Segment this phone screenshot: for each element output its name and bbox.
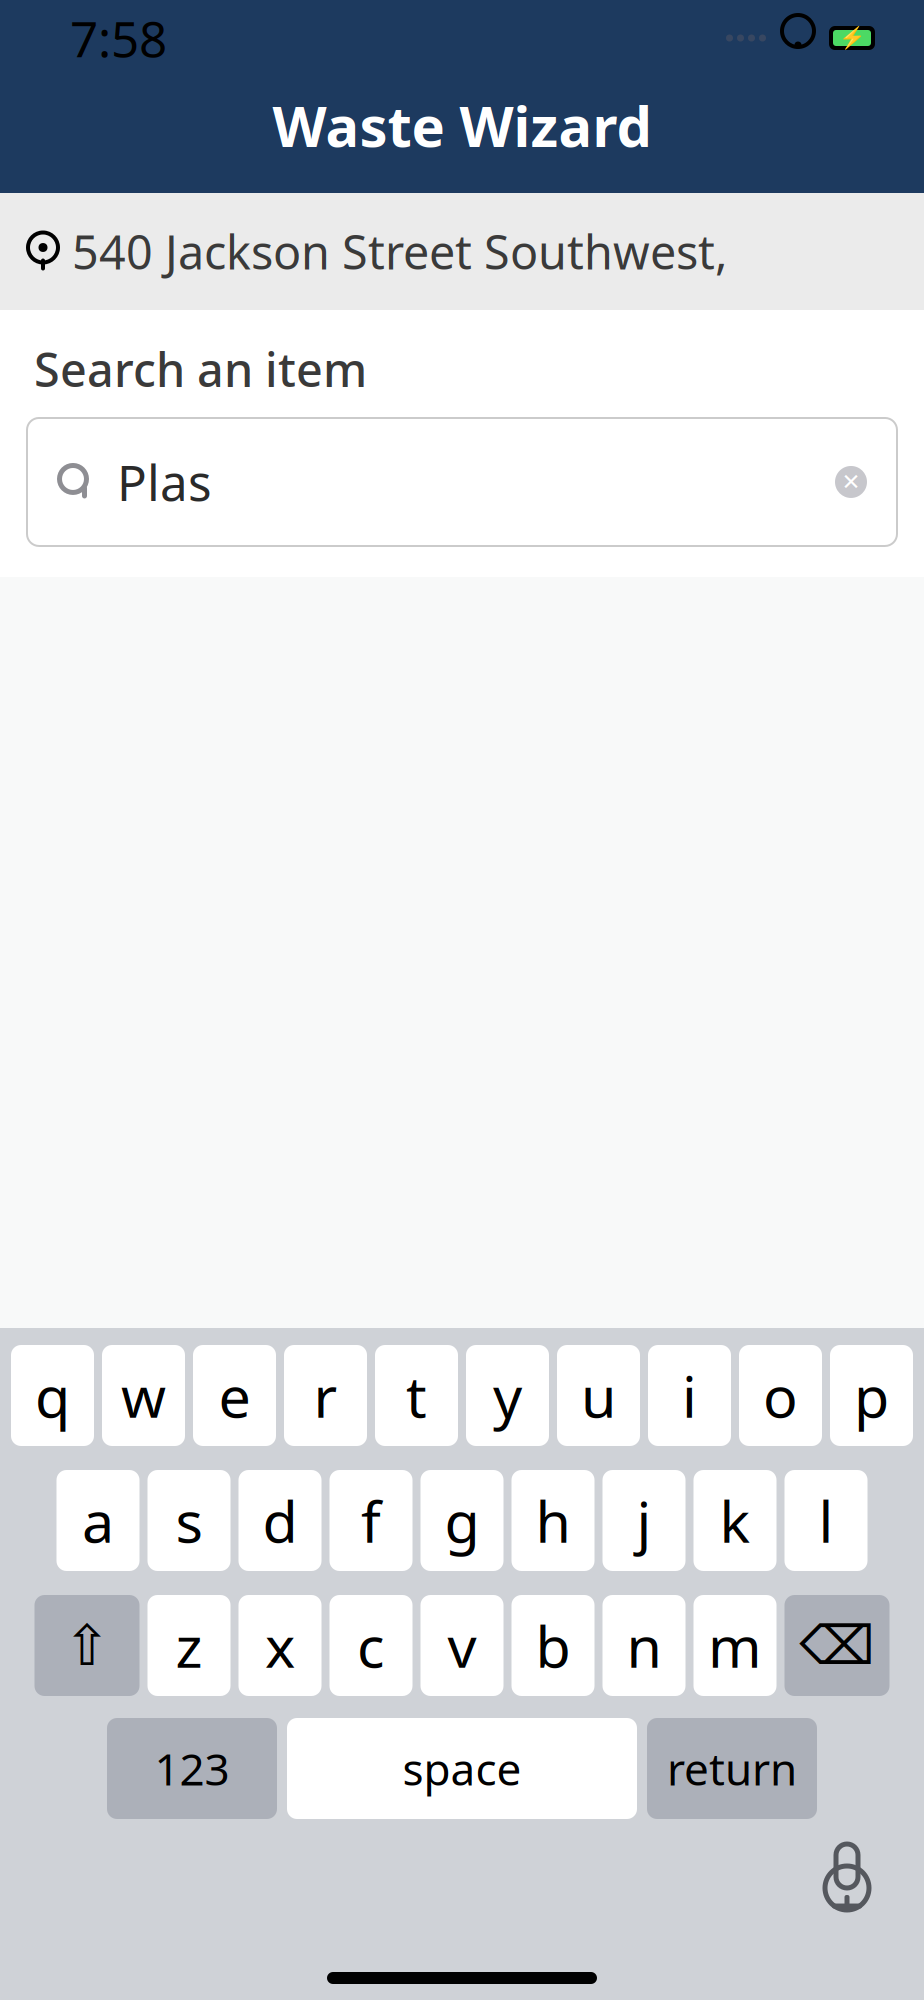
button[interactable]: m <box>693 1595 776 1696</box>
button[interactable]: x <box>238 1595 321 1696</box>
staticText: space <box>402 1739 521 1798</box>
staticText: z <box>175 1607 202 1683</box>
staticText: k <box>719 1482 750 1558</box>
button[interactable]: c <box>329 1595 412 1696</box>
staticText: q <box>35 1357 70 1433</box>
staticText: l <box>818 1482 833 1558</box>
staticText: return <box>667 1739 797 1798</box>
button[interactable]: k <box>693 1470 776 1571</box>
button[interactable]: l <box>784 1470 867 1571</box>
staticText: t <box>406 1357 427 1433</box>
staticText: c <box>357 1607 385 1683</box>
button[interactable]: u <box>557 1345 640 1446</box>
staticText: h <box>535 1482 570 1558</box>
staticText: i <box>682 1357 697 1433</box>
button[interactable]: b <box>511 1595 594 1696</box>
button[interactable]: j <box>602 1470 685 1571</box>
staticText: m <box>708 1607 762 1683</box>
button[interactable]: s <box>147 1470 230 1571</box>
button[interactable]: d <box>238 1470 321 1571</box>
staticText: ⚡ <box>838 26 865 50</box>
button[interactable]: o <box>739 1345 822 1446</box>
button[interactable]: h <box>511 1470 594 1571</box>
button[interactable]: y <box>466 1345 549 1446</box>
button[interactable]: t <box>375 1345 458 1446</box>
staticText: w <box>121 1357 166 1433</box>
staticText: 7:58 <box>70 5 167 71</box>
staticText: n <box>626 1607 661 1683</box>
button[interactable]: Plas <box>27 418 897 546</box>
button[interactable]: z <box>147 1595 230 1696</box>
staticText: x <box>265 1607 295 1683</box>
button[interactable]: r <box>284 1345 367 1446</box>
button[interactable]: v <box>420 1595 503 1696</box>
staticText: o <box>763 1357 798 1433</box>
staticText: Waste Wizard <box>272 88 651 162</box>
button[interactable]: e <box>193 1345 276 1446</box>
staticText: f <box>361 1482 381 1558</box>
staticText: v <box>447 1607 476 1683</box>
button[interactable]: g <box>420 1470 503 1571</box>
button[interactable]: 540 Jackson Street Southwest, <box>0 193 924 310</box>
button[interactable]: 123 <box>107 1718 277 1819</box>
staticText: a <box>82 1482 114 1558</box>
staticText: y <box>493 1357 522 1433</box>
staticText: j <box>636 1482 651 1558</box>
button[interactable]: p <box>830 1345 913 1446</box>
button[interactable]: Shift <box>34 1595 139 1696</box>
button[interactable]: w <box>102 1345 185 1446</box>
staticText: s <box>175 1482 202 1558</box>
staticText: 540 Jackson Street Southwest, <box>72 220 728 282</box>
button[interactable]: q <box>11 1345 94 1446</box>
staticText: d <box>262 1482 297 1558</box>
staticText: Plas <box>117 449 212 515</box>
staticText: g <box>444 1482 479 1558</box>
staticText: Search an item <box>34 338 367 400</box>
button[interactable]: n <box>602 1595 685 1696</box>
staticText: b <box>535 1607 570 1683</box>
button[interactable]: a <box>56 1470 139 1571</box>
staticText: r <box>313 1357 337 1433</box>
button[interactable]: space <box>287 1718 637 1819</box>
button[interactable]: i <box>648 1345 731 1446</box>
button[interactable]: Delete <box>784 1595 889 1696</box>
staticText: 123 <box>154 1739 229 1798</box>
button[interactable]: Dictate <box>818 1837 876 1913</box>
staticText: ⇧ <box>63 1614 110 1677</box>
button[interactable]: f <box>329 1470 412 1571</box>
staticText: ✕ <box>841 469 860 495</box>
staticText: e <box>218 1357 250 1433</box>
staticText: u <box>581 1357 616 1433</box>
staticText: p <box>854 1357 889 1433</box>
staticText: ⌫ <box>799 1615 874 1676</box>
button[interactable]: return <box>647 1718 817 1819</box>
